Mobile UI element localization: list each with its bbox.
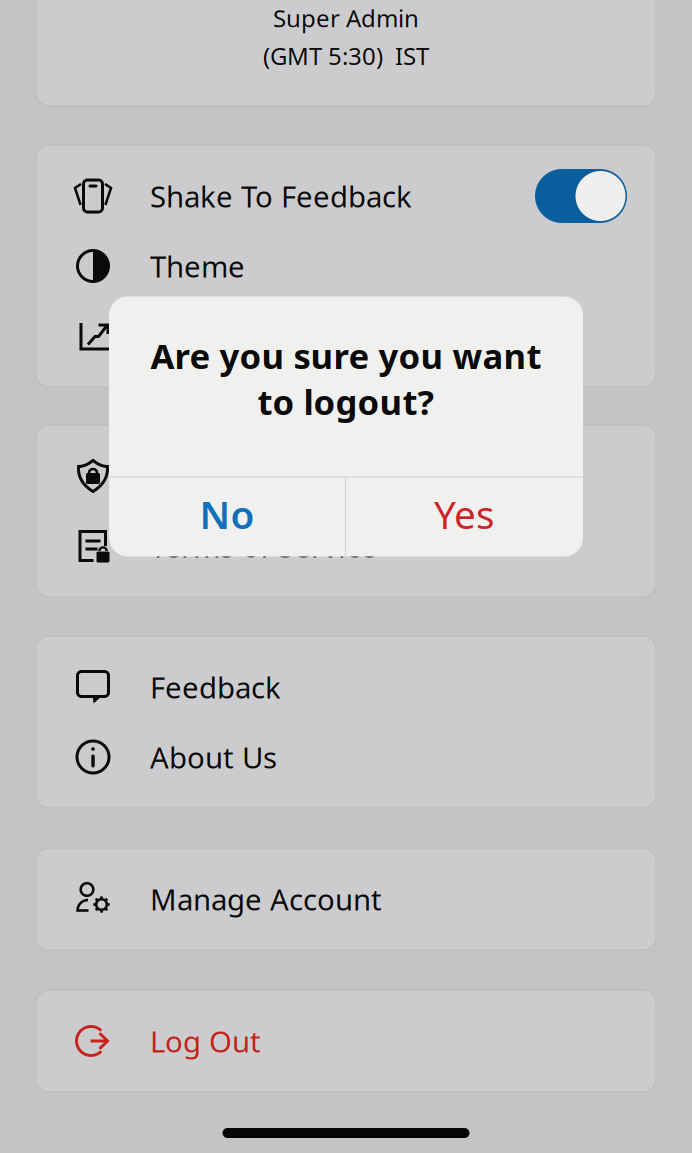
button[interactable]: Feedback bbox=[36, 652, 656, 722]
staticText: Analytics bbox=[150, 316, 273, 355]
button[interactable]: About Us bbox=[36, 722, 656, 792]
button[interactable]: Shake To Feedback bbox=[36, 161, 656, 231]
button[interactable]: Theme bbox=[36, 231, 656, 301]
button[interactable]: Terms of Service bbox=[36, 511, 656, 581]
button[interactable]: Privacy Policy bbox=[36, 441, 656, 511]
staticText: Are you sure you want bbox=[150, 332, 541, 378]
staticText: Super Admin bbox=[273, 2, 419, 34]
staticText: to logout? bbox=[257, 378, 434, 424]
staticText: Manage Account bbox=[150, 879, 382, 918]
staticText: Privacy Policy bbox=[150, 456, 337, 495]
staticText: Log Out bbox=[150, 1021, 261, 1060]
staticText: (GMT 5:30) IST bbox=[263, 40, 429, 72]
staticText: Theme bbox=[150, 246, 245, 285]
staticText: About Us bbox=[150, 737, 277, 776]
staticText: No bbox=[199, 488, 254, 540]
staticText: Shake To Feedback bbox=[150, 176, 412, 215]
staticText: Feedback bbox=[150, 667, 281, 706]
button[interactable]: No bbox=[109, 477, 345, 556]
button[interactable]: Log Out bbox=[36, 1006, 656, 1076]
staticText: Yes bbox=[434, 488, 495, 540]
staticText: Terms of Service bbox=[150, 526, 377, 565]
button[interactable]: Yes bbox=[346, 477, 583, 556]
button[interactable]: Manage Account bbox=[36, 864, 656, 934]
button[interactable]: Analytics bbox=[36, 301, 656, 371]
